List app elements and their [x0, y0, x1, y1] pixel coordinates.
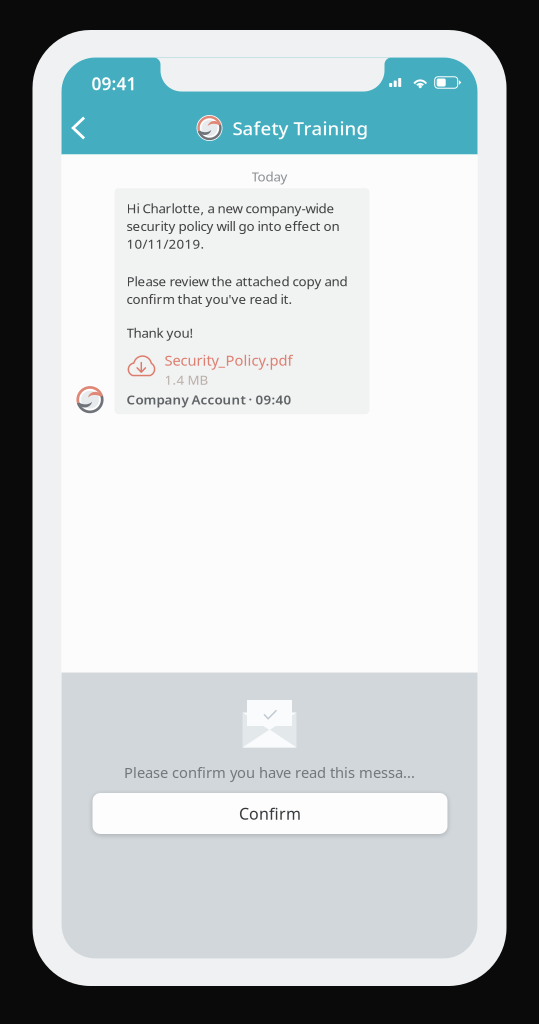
button[interactable]: Security_Policy.pdf [126, 354, 357, 384]
staticText: 1.4 MB [164, 371, 208, 388]
staticText: Please confirm you have read this messa.… [124, 762, 415, 782]
button[interactable]: Confirm [92, 793, 447, 834]
staticText: Safety Training [232, 116, 368, 140]
staticText: Hi Charlotte, a new company-wide securit… [126, 199, 339, 252]
staticText: Thank you! [126, 324, 193, 341]
staticText: Company Account · 09:40 [126, 390, 291, 408]
staticText: Please review the attached copy and conf… [126, 272, 347, 308]
staticText: 09:41 [91, 72, 136, 95]
staticText: Today [251, 167, 287, 185]
button[interactable]: Back [56, 106, 100, 150]
staticText: Confirm [239, 803, 301, 824]
staticText: Security_Policy.pdf [164, 350, 292, 370]
